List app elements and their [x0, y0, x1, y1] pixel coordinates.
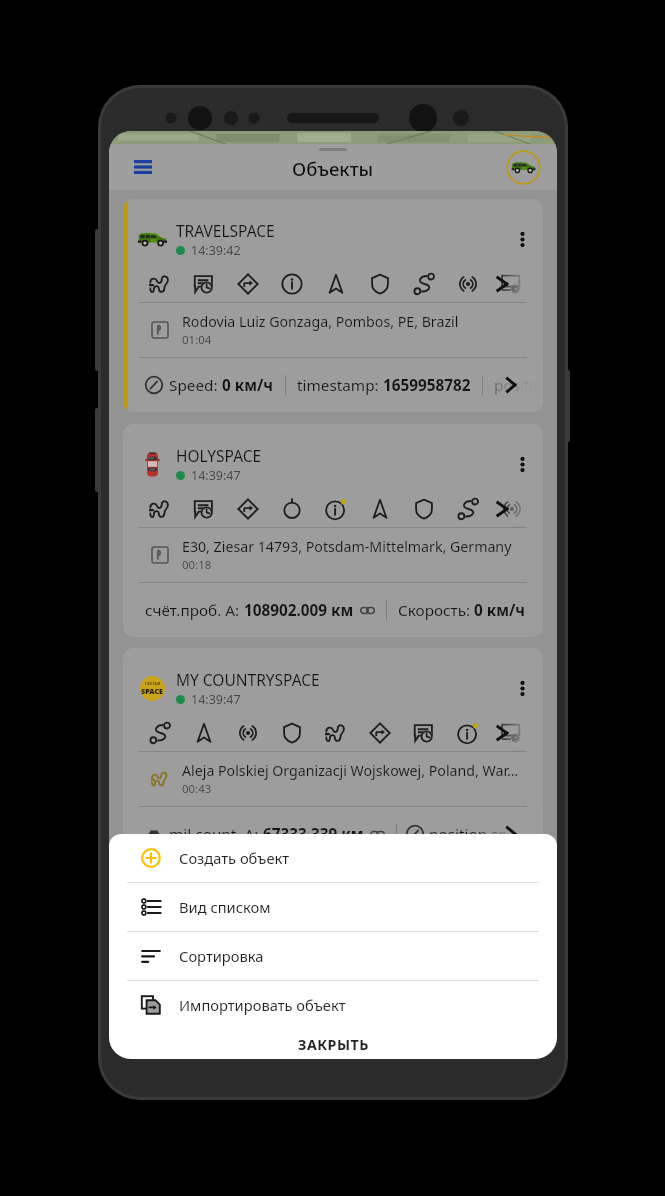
button[interactable]: Signal: [501, 498, 523, 520]
button[interactable]: Сортировка: [109, 932, 557, 980]
button[interactable]: Info: [281, 273, 303, 295]
staticText: TRAVELSPACE: [176, 220, 275, 241]
button[interactable]: Scroll right: [497, 371, 525, 399]
staticText: Aleja Polskiej Organizacji Wojskowej, Po…: [182, 761, 519, 780]
button[interactable]: Menu: [126, 150, 160, 184]
staticText: 14:39:42: [191, 242, 241, 259]
staticText: Сортировка: [179, 946, 264, 966]
button[interactable]: Импортировать объект: [109, 981, 557, 1029]
staticText: 14:39:47: [191, 691, 241, 708]
button[interactable]: Signal: [237, 722, 259, 744]
button[interactable]: Direction: [325, 273, 347, 295]
button[interactable]: Track: [149, 273, 171, 295]
staticText: CBETAM: [145, 682, 161, 686]
staticText: timestamp:: [297, 375, 383, 396]
button[interactable]: Security: [369, 273, 391, 295]
button[interactable]: Navigate: [237, 273, 259, 295]
button[interactable]: Route: [149, 722, 171, 744]
button[interactable]: More options: [505, 447, 539, 481]
staticText: 01:04: [182, 332, 212, 348]
button[interactable]: Track: [149, 498, 171, 520]
button[interactable]: Navigate: [237, 498, 259, 520]
button[interactable]: More actions: [492, 273, 514, 295]
button[interactable]: Target: [281, 498, 303, 520]
button[interactable]: HOLYSPACE: [123, 424, 543, 637]
staticText: 00:43: [182, 781, 212, 797]
button[interactable]: More actions: [492, 722, 514, 744]
button[interactable]: Settings: [501, 722, 523, 744]
button[interactable]: More options: [505, 222, 539, 256]
staticText: E30, Ziesar 14793, Potsdam-Mittelmark, G…: [182, 537, 512, 556]
staticText: Создать объект: [179, 848, 290, 868]
staticText: Rodovia Luiz Gonzaga, Pombos, PE, Brazil: [182, 312, 459, 331]
staticText: 0 км/ч: [222, 375, 274, 396]
button[interactable]: Track: [325, 722, 347, 744]
staticText: mil.count. A:: [169, 824, 263, 845]
button[interactable]: Notifications: [325, 498, 347, 520]
staticText: Объекты: [292, 156, 374, 181]
button[interactable]: More options: [505, 671, 539, 705]
button[interactable]: Notifications: [457, 722, 479, 744]
staticText: MY COUNTRYSPACE: [176, 669, 320, 690]
button[interactable]: Settings: [501, 273, 523, 295]
staticText: Вид списком: [179, 897, 271, 917]
staticText: 0 км/ч: [474, 600, 526, 621]
button[interactable]: Route: [413, 273, 435, 295]
button[interactable]: Messages: [413, 722, 435, 744]
staticText: счёт.проб. A:: [145, 600, 244, 621]
staticText: HOLYSPACE: [176, 445, 262, 466]
button[interactable]: Route: [457, 498, 479, 520]
staticText: Скорость:: [398, 600, 474, 621]
staticText: ЗАКРЫТЬ: [298, 1035, 369, 1054]
button[interactable]: Messages: [193, 273, 215, 295]
button[interactable]: CBETAM: [123, 648, 543, 861]
staticText: SPACE: [141, 686, 164, 696]
button[interactable]: Scroll right: [497, 820, 525, 848]
button[interactable]: Security: [413, 498, 435, 520]
button[interactable]: Direction: [193, 722, 215, 744]
button[interactable]: Messages: [193, 498, 215, 520]
button[interactable]: Direction: [369, 498, 391, 520]
staticText: position.sp: [494, 375, 543, 396]
button[interactable]: TRAVELSPACE: [123, 199, 543, 412]
button[interactable]: ЗАКРЫТЬ: [109, 1029, 557, 1059]
staticText: 67333.339 км: [263, 824, 364, 845]
button[interactable]: Navigate: [369, 722, 391, 744]
button[interactable]: Создать объект: [109, 834, 557, 882]
staticText: Speed:: [169, 375, 222, 396]
staticText: 1659958782: [383, 375, 471, 396]
staticText: 14:39:47: [191, 467, 241, 484]
button[interactable]: Вид списком: [109, 883, 557, 931]
staticText: 00:18: [182, 557, 212, 573]
button[interactable]: Security: [281, 722, 303, 744]
button[interactable]: Profile: [506, 150, 541, 185]
button[interactable]: More actions: [492, 498, 514, 520]
staticText: position.sp: [429, 824, 508, 845]
staticText: 108902.009 км: [244, 600, 354, 621]
button[interactable]: Signal: [457, 273, 479, 295]
staticText: Импортировать объект: [179, 995, 346, 1015]
